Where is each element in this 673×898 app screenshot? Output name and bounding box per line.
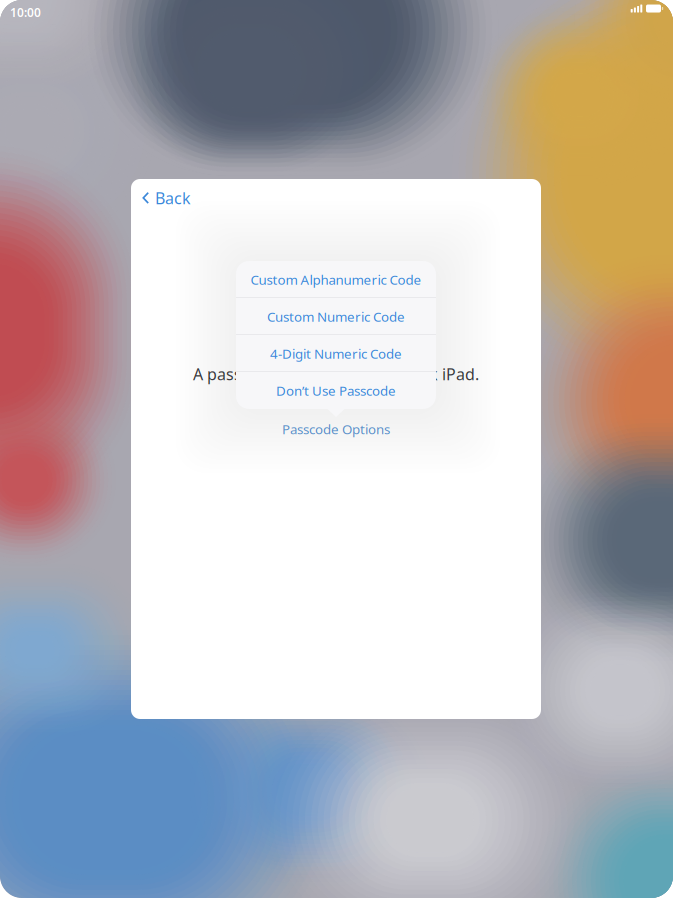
staticText: A passcode is required to unlock iPad. [193, 363, 479, 385]
button[interactable]: Custom Alphanumeric Code [236, 261, 436, 298]
staticText: Custom Numeric Code [267, 308, 405, 325]
staticText: Don’t Use Passcode [276, 382, 396, 399]
staticText: 4-Digit Numeric Code [270, 345, 402, 362]
staticText: 10:00 [10, 4, 41, 20]
button[interactable]: 4-Digit Numeric Code [236, 335, 436, 372]
staticText: Custom Alphanumeric Code [250, 271, 421, 288]
button[interactable]: Passcode Options [236, 421, 436, 437]
button[interactable]: Custom Numeric Code [236, 298, 436, 335]
button[interactable]: Don’t Use Passcode [236, 372, 436, 409]
button[interactable]: Back [140, 185, 199, 211]
staticText: Back [155, 187, 191, 209]
staticText: Passcode Options [282, 420, 390, 438]
